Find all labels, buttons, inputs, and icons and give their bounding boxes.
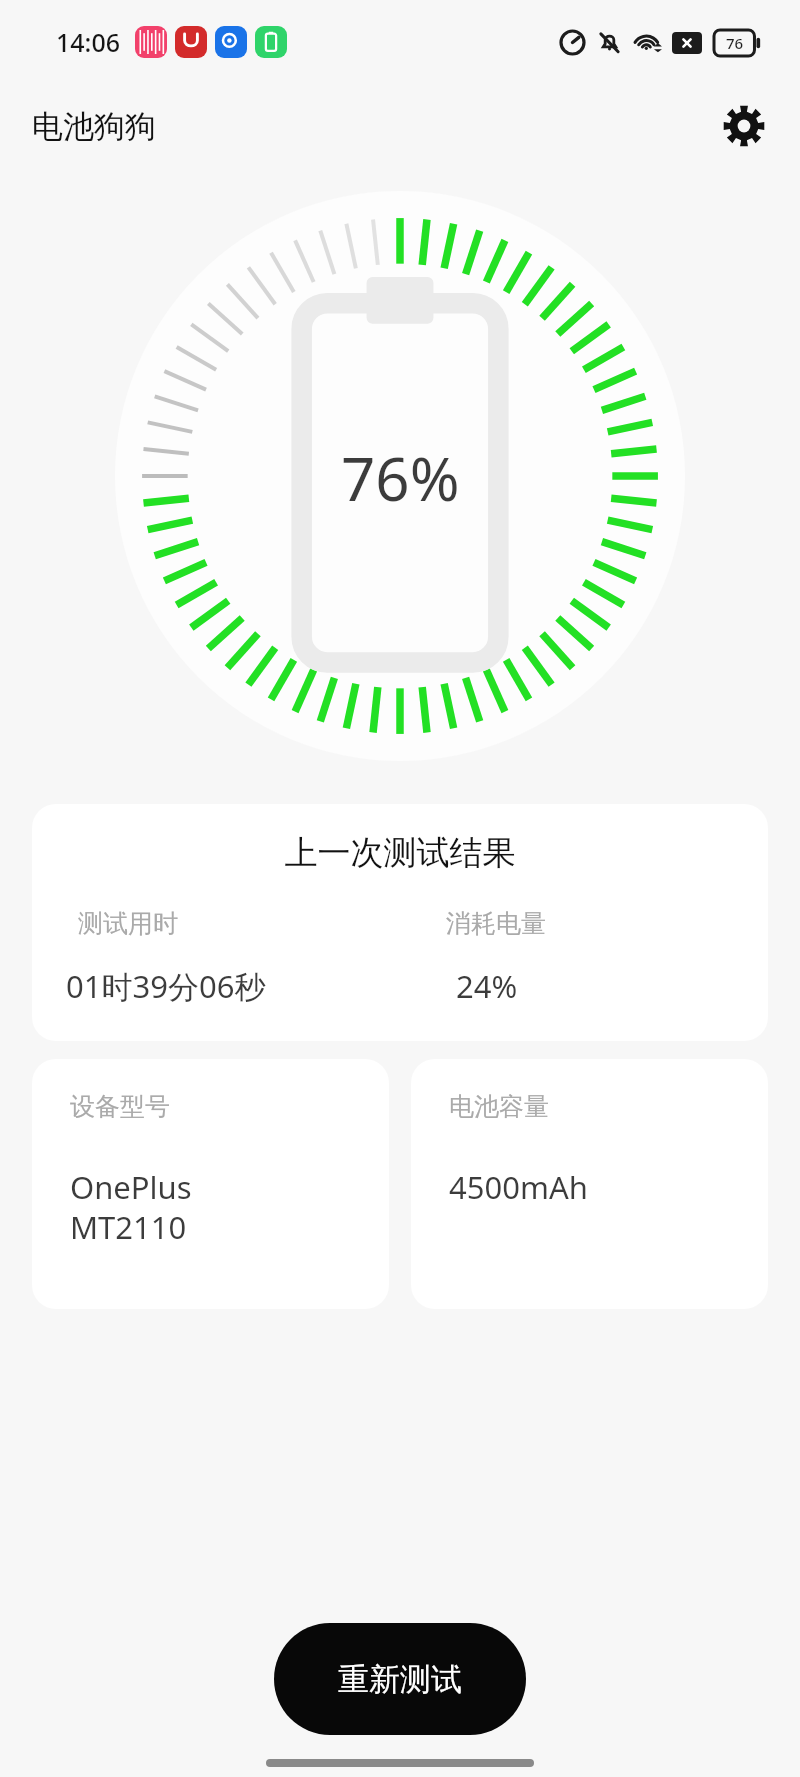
button[interactable]: 设备型号 [32, 1059, 389, 1309]
button[interactable]: 重新测试 [274, 1623, 526, 1735]
staticText: 测试用时 [78, 908, 178, 939]
button[interactable]: 上一次测试结果 [32, 804, 768, 1041]
staticText: 设备型号 [70, 1091, 170, 1122]
staticText: 14:06 [56, 25, 121, 59]
staticText: 01时39分06秒 [66, 965, 266, 1007]
staticText: 消耗电量 [446, 908, 546, 939]
staticText: 电池容量 [449, 1091, 549, 1122]
staticText: 76 [726, 33, 744, 53]
staticText: 重新测试 [338, 1660, 462, 1699]
staticText: 24% [456, 965, 518, 1007]
staticText: 4500mAh [449, 1166, 588, 1208]
staticText: 上一次测试结果 [32, 832, 768, 874]
staticText: 76% [341, 437, 460, 519]
button[interactable]: Settings [716, 98, 772, 154]
button[interactable]: 电池容量 [411, 1059, 768, 1309]
staticText: 电池狗狗 [32, 107, 156, 146]
staticText: OnePlus MT2110 [70, 1166, 192, 1248]
